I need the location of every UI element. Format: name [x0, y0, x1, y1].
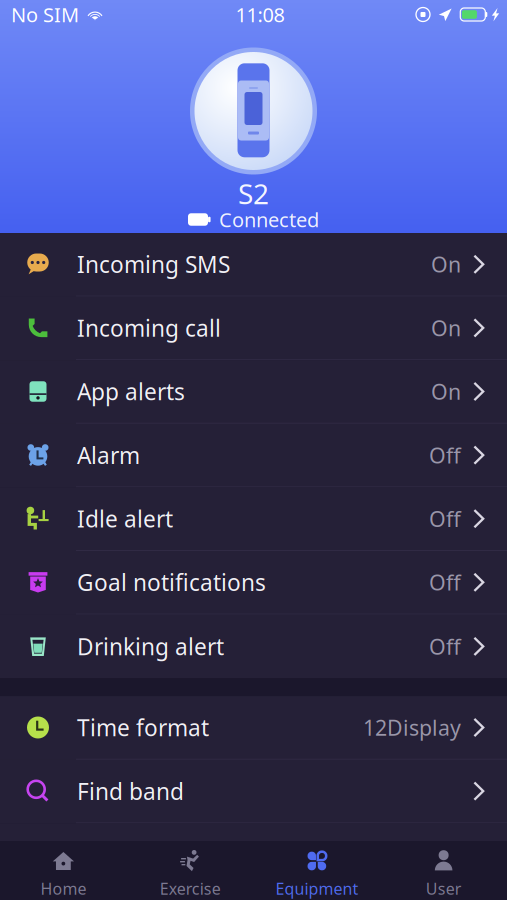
button[interactable]: Alarm [0, 424, 507, 487]
staticText: On [431, 314, 461, 342]
button[interactable]: Exercise [127, 841, 254, 900]
staticText: Drinking alert [77, 631, 224, 661]
staticText: 11:08 [235, 1, 284, 28]
staticText: Incoming call [77, 313, 221, 343]
staticText: Find band [77, 776, 184, 806]
staticText: Exercise [160, 878, 221, 899]
staticText: Idle alert [77, 504, 173, 534]
button[interactable]: Find band [0, 760, 507, 823]
staticText: App alerts [77, 376, 185, 406]
button[interactable]: Goal notifications [0, 551, 507, 615]
button[interactable]: Drinking alert [0, 615, 507, 678]
staticText: Off [429, 568, 461, 596]
button[interactable]: Incoming SMS [0, 233, 507, 297]
button[interactable]: User [380, 841, 507, 900]
button[interactable]: Time format [0, 696, 507, 760]
staticText: Connected [219, 206, 319, 233]
staticText: No SIM [11, 1, 79, 28]
button[interactable]: Idle alert [0, 487, 507, 551]
staticText: On [431, 250, 461, 278]
staticText: 12Display [363, 713, 461, 742]
button[interactable]: Equipment [253, 841, 380, 900]
staticText: Alarm [77, 440, 140, 470]
staticText: User [426, 878, 462, 899]
staticText: Off [429, 632, 461, 660]
staticText: Home [40, 878, 86, 899]
staticText: Equipment [275, 878, 358, 899]
staticText: S2 [238, 175, 269, 212]
staticText: On [431, 377, 461, 406]
staticText: Off [429, 441, 461, 469]
button[interactable]: App alerts [0, 360, 507, 424]
button[interactable]: Home [0, 841, 127, 900]
button[interactable]: Incoming call [0, 297, 507, 360]
staticText: Goal notifications [77, 567, 266, 597]
staticText: Time format [77, 712, 209, 742]
staticText: Off [429, 504, 461, 533]
staticText: Incoming SMS [77, 249, 230, 279]
